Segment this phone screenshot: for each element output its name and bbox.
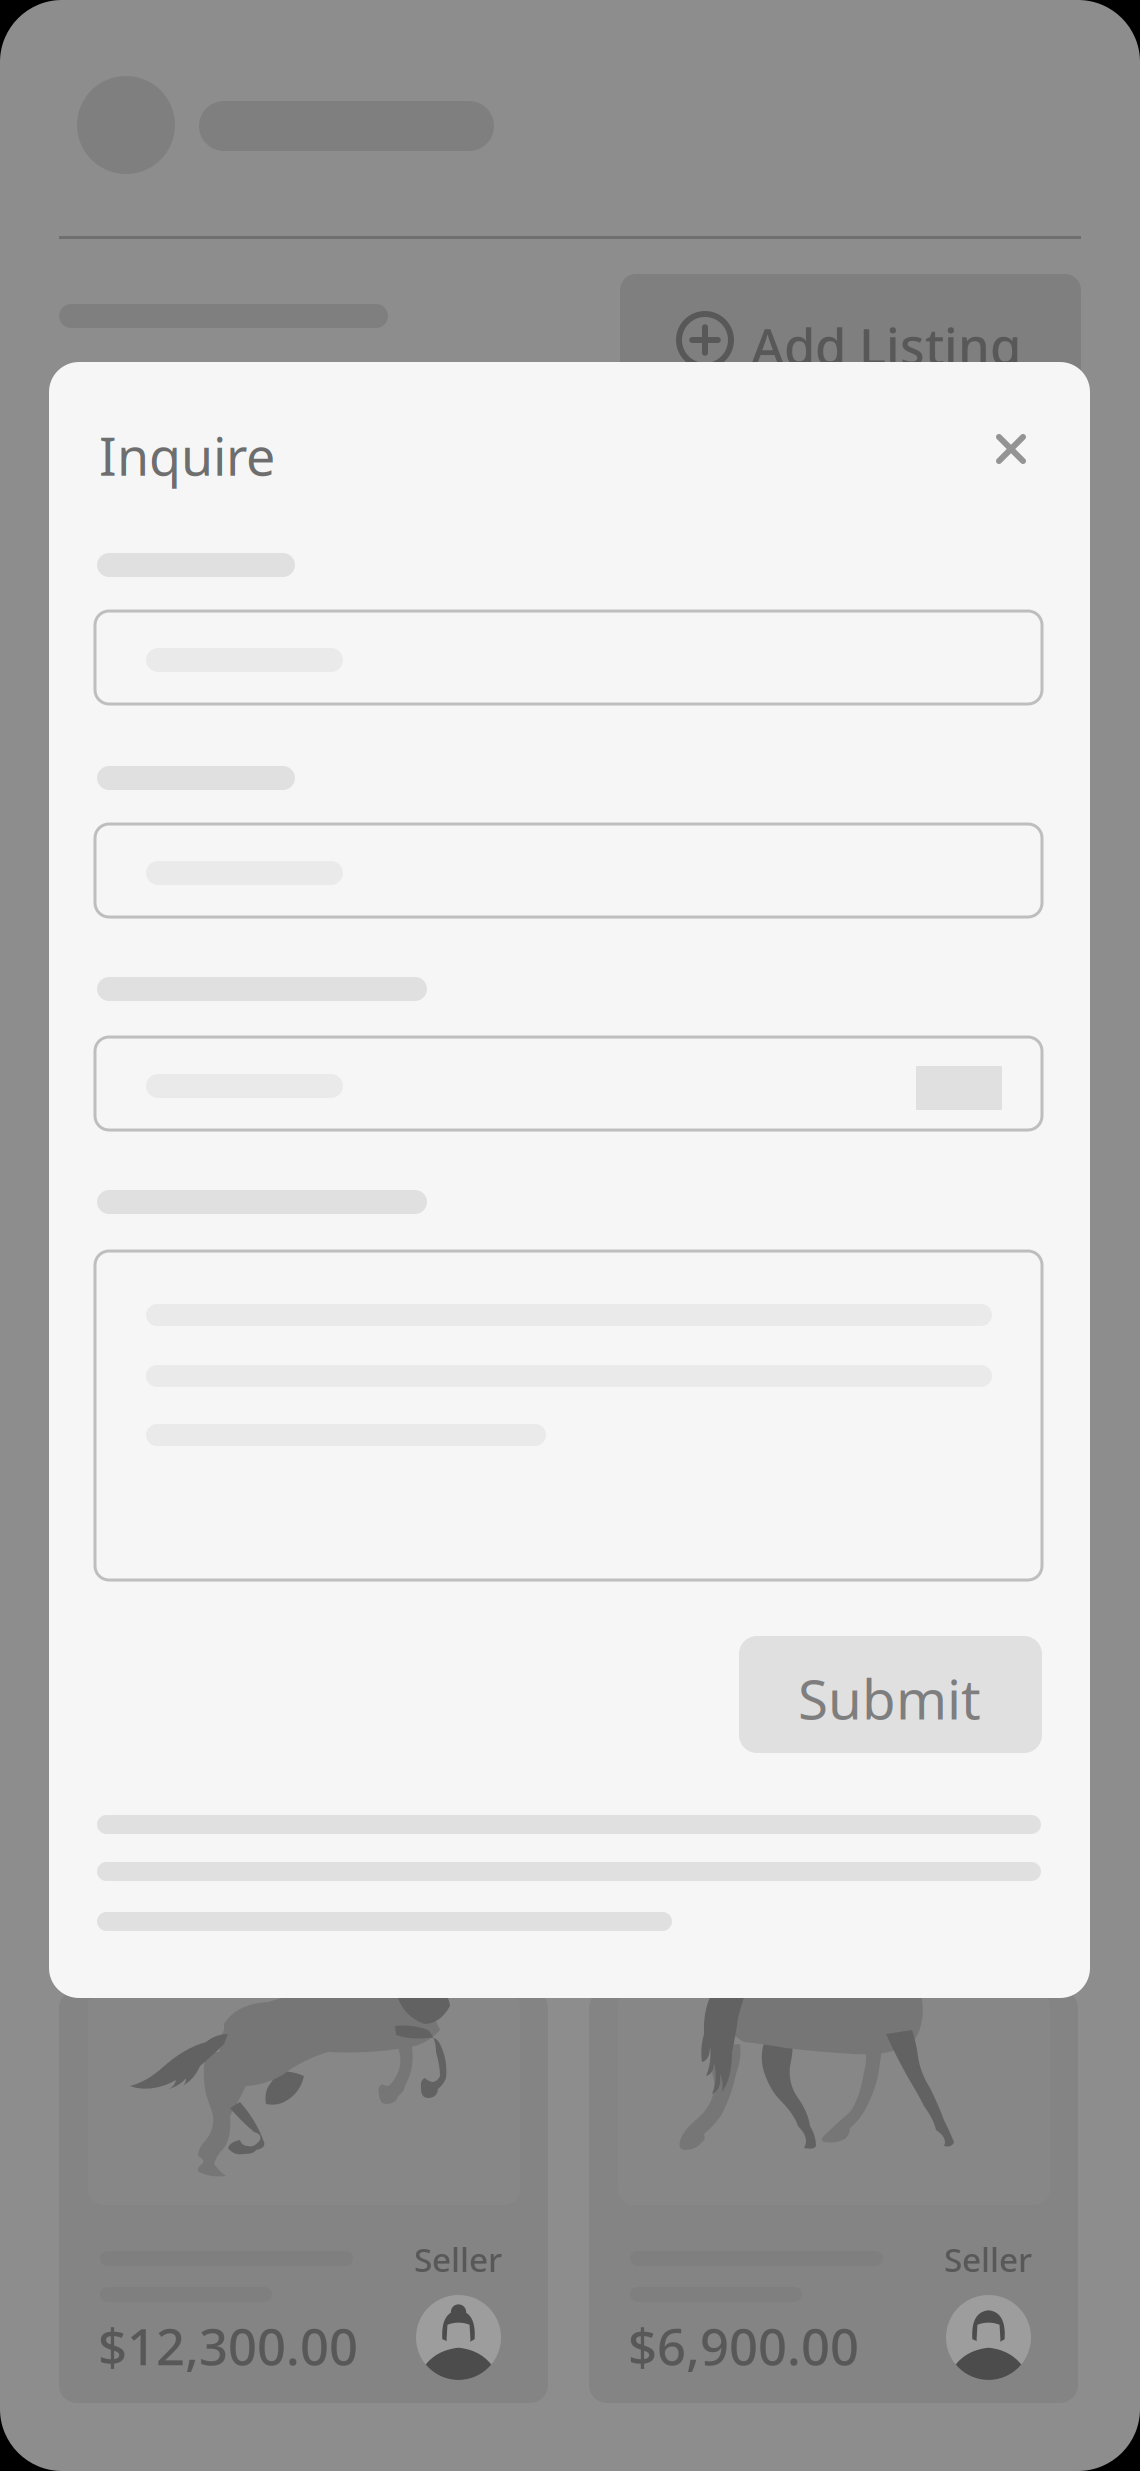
staticText: Inquire bbox=[99, 421, 275, 490]
button[interactable]: Close bbox=[974, 412, 1048, 486]
button[interactable]: $12,300.00 bbox=[59, 1990, 548, 2403]
button[interactable]: Add Listing bbox=[620, 274, 1081, 434]
button[interactable]: Submit bbox=[739, 1636, 1042, 1753]
staticText: Submit bbox=[798, 1662, 981, 1735]
staticText: Seller bbox=[414, 2237, 502, 2281]
staticText: Add Listing bbox=[751, 312, 1021, 379]
staticText: $12,300.00 bbox=[98, 2312, 358, 2379]
button[interactable]: $6,900.00 bbox=[589, 1990, 1078, 2403]
staticText: Seller bbox=[944, 2237, 1032, 2281]
staticText: $6,900.00 bbox=[628, 2312, 859, 2379]
